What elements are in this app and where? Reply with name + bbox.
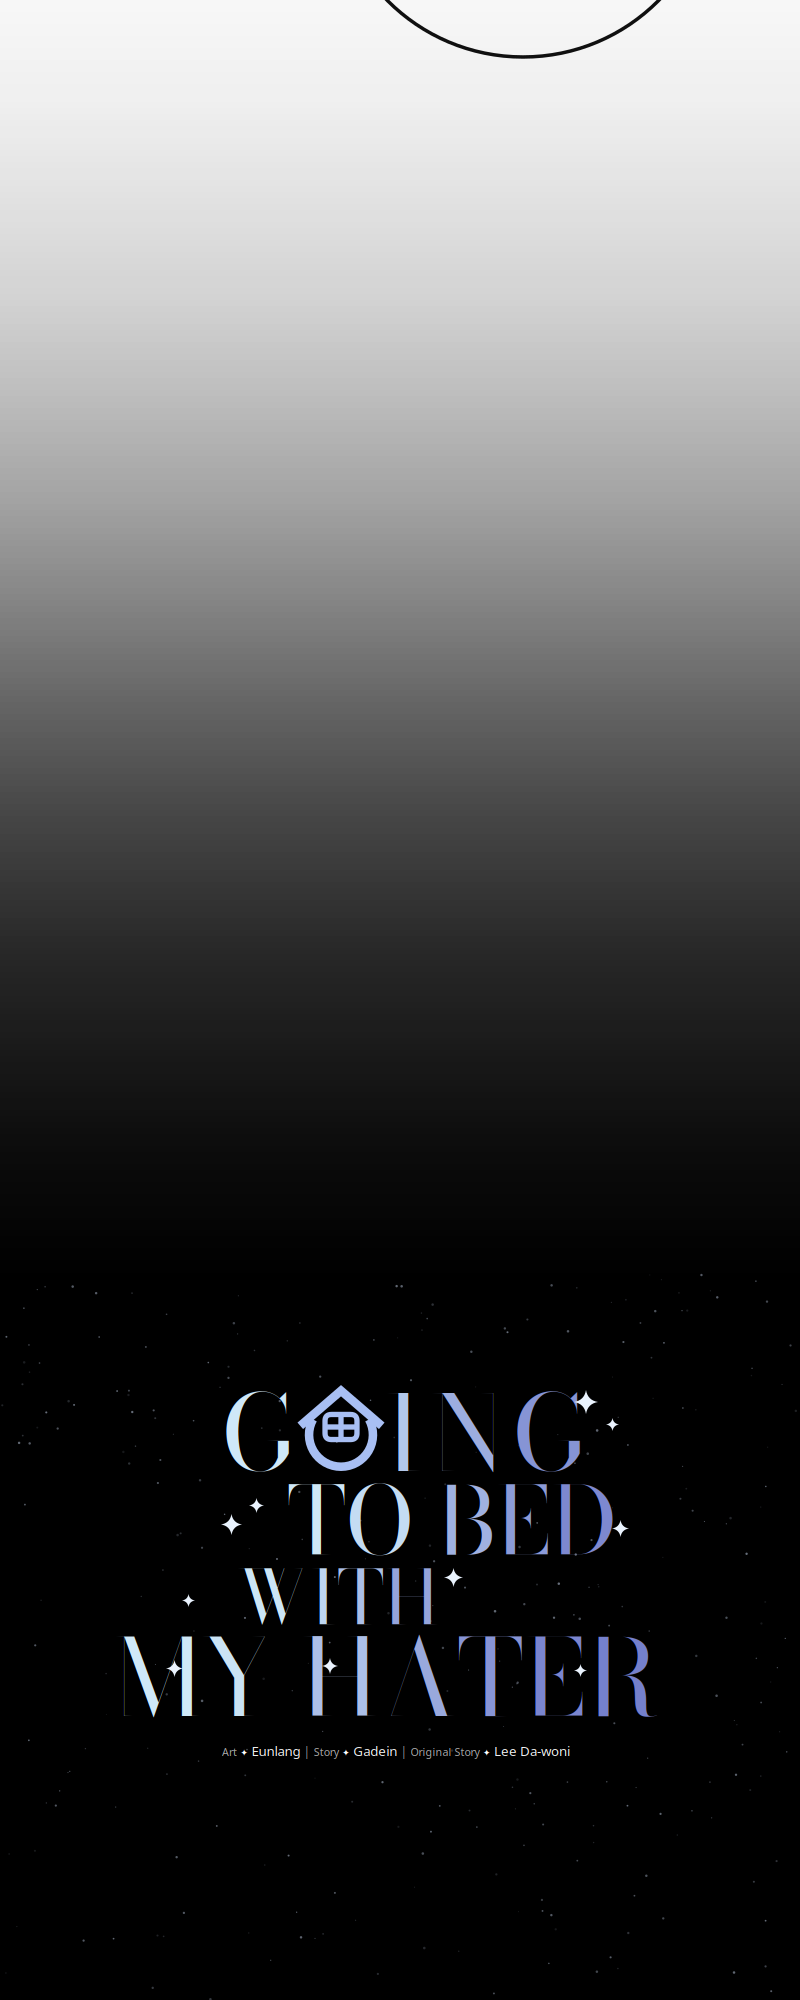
staticText: Story	[314, 1745, 339, 1759]
staticText: A	[379, 1597, 457, 1758]
staticText: N	[430, 1354, 506, 1513]
staticText: Y	[201, 1597, 275, 1758]
staticText: Art	[222, 1745, 237, 1759]
staticText: Original Story	[411, 1745, 480, 1759]
staticText: I	[385, 1354, 423, 1513]
staticText: I	[310, 1540, 337, 1654]
staticText: ✦	[240, 1747, 248, 1758]
staticText: E	[524, 1597, 585, 1758]
staticText: T	[287, 1450, 346, 1592]
staticText: ✦	[342, 1747, 350, 1758]
staticText: T	[337, 1540, 384, 1654]
staticText: R	[585, 1597, 658, 1758]
staticText: W	[237, 1540, 310, 1654]
staticText	[414, 1450, 437, 1592]
staticText: H	[301, 1597, 379, 1758]
staticText: |	[400, 1743, 407, 1759]
staticText: T	[457, 1597, 524, 1758]
staticText: B	[437, 1450, 496, 1592]
staticText: H	[384, 1540, 439, 1654]
staticText: Gadein	[353, 1742, 397, 1760]
staticText: E	[496, 1450, 551, 1592]
staticText: D	[551, 1450, 616, 1592]
staticText: |	[304, 1743, 311, 1759]
staticText: G	[222, 1354, 296, 1513]
staticText: Lee Da-woni	[494, 1742, 570, 1760]
staticText: O	[303, 1354, 378, 1513]
staticText: M	[114, 1597, 201, 1758]
staticText: O	[346, 1450, 414, 1592]
staticText: ✦	[483, 1747, 491, 1758]
staticText: G	[513, 1354, 587, 1513]
staticText	[275, 1597, 301, 1758]
staticText: Eunlang	[251, 1742, 300, 1760]
